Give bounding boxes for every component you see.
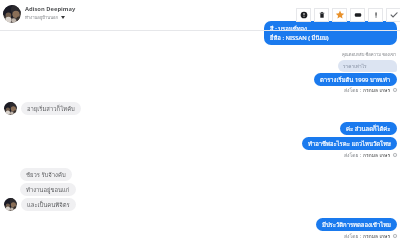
staticText: ส่งโดย : (344, 151, 363, 159)
button[interactable]: มีประวัติการทดลองเข้าไหม (316, 218, 397, 231)
button[interactable]: ชัยวร รับจ้างคับ (20, 168, 72, 181)
button[interactable]: ทำงานอยู่ขอนแก่ (20, 183, 76, 196)
staticText: คุณตอบกลับ ข้อความ ของเขา (342, 51, 397, 58)
staticText: สี : บรอนซ์ทอง (270, 24, 307, 33)
button[interactable]: Done (386, 8, 400, 22)
button[interactable]: Archive (350, 8, 365, 22)
staticText: และเป็นคนพิจิตร (27, 200, 70, 209)
staticText: ทำงานอยู่ขอนแก่ (26, 185, 70, 194)
button[interactable]: อายุเริ่มสาวก็โทคับ (21, 102, 81, 115)
button[interactable]: Star (332, 8, 347, 22)
button[interactable]: ค่ะ ส่วนลดก็ได้ค่ะ (340, 122, 397, 135)
staticText: อายุเริ่มสาวก็โทคับ (27, 104, 75, 113)
staticText: ชัยวร รับจ้างคับ (26, 170, 66, 179)
button[interactable]: และเป็นคนพิจิตร (21, 198, 76, 211)
staticText: ค่ะ ส่วนลดก็ได้ค่ะ (346, 124, 391, 133)
button[interactable]: ทำอาชีพอะไรคะ แถวไหนวัดโทษ (302, 137, 397, 150)
button[interactable]: Mark unread (368, 8, 383, 22)
staticText: ทำอาชีพอะไรคะ แถวไหนวัดโทษ (308, 139, 391, 148)
staticText: กรกมล เกษร (363, 232, 391, 240)
staticText: ยี่ห้อ : NISSAN ( มีนิยม) (270, 33, 329, 42)
button[interactable]: ตารางเริ่มต้น 1999 บาทเท่า (314, 73, 397, 86)
staticText: กรกมล เกษร (363, 86, 391, 94)
staticText: กรกมล เกษร (363, 151, 391, 159)
staticText: ทำงานอยู่บ้านนอก (25, 14, 59, 21)
staticText: ราคาเท่าไร (343, 62, 367, 70)
staticText: ส่งโดย : (344, 86, 363, 94)
staticText: ส่งโดย : (344, 232, 363, 240)
button[interactable]: สี : บรอนซ์ทอง (264, 21, 397, 45)
staticText: ตารางเริ่มต้น 1999 บาทเท่า (320, 75, 391, 84)
button[interactable]: Delete (314, 8, 329, 22)
button[interactable]: ราคาเท่าไร (338, 60, 397, 72)
staticText: Adison Deepimay (25, 5, 76, 13)
staticText: มีประวัติการทดลองเข้าไหม (322, 220, 391, 229)
button[interactable]: Info (296, 8, 311, 22)
